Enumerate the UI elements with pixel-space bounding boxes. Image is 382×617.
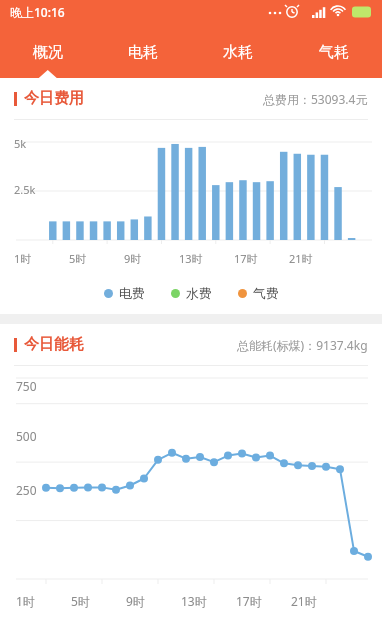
staticText: 5时 — [71, 593, 90, 609]
staticText: 水耗 — [223, 43, 253, 62]
button[interactable]: 电费 — [104, 285, 145, 301]
staticText: 电费 — [119, 285, 145, 301]
staticText: 13时 — [179, 251, 203, 266]
button[interactable]: 5k — [0, 120, 382, 272]
staticText: 9时 — [126, 593, 145, 609]
staticText: 1时 — [14, 251, 32, 266]
staticText: 750 — [16, 378, 37, 394]
staticText: 9时 — [124, 251, 142, 266]
staticText: 晚上10:16 — [10, 4, 65, 20]
button[interactable]: 750 — [0, 366, 382, 617]
staticText: 21时 — [291, 593, 317, 609]
button[interactable]: 水费 — [171, 285, 212, 301]
staticText: 水费 — [186, 285, 212, 301]
staticText: 500 — [16, 428, 37, 444]
staticText: 概况 — [33, 43, 63, 62]
staticText: 气耗 — [319, 43, 349, 62]
staticText: 17时 — [234, 251, 258, 266]
staticText: 21时 — [289, 251, 313, 266]
staticText: 今日费用 — [24, 89, 84, 108]
button[interactable]: 电耗 — [95, 26, 190, 78]
staticText: 250 — [16, 482, 37, 498]
button[interactable]: 概况 — [0, 26, 95, 78]
staticText: 2.5k — [14, 182, 36, 197]
staticText: 今日能耗 — [24, 335, 84, 354]
staticText: 总费用：53093.4元 — [263, 91, 368, 107]
button[interactable]: 气耗 — [286, 26, 382, 78]
staticText: 13时 — [181, 593, 207, 609]
staticText: 17时 — [236, 593, 262, 609]
staticText: 5k — [14, 136, 27, 151]
staticText: 1时 — [16, 593, 35, 609]
staticText: 总能耗(标煤)：9137.4kg — [237, 337, 368, 353]
button[interactable]: 水耗 — [190, 26, 286, 78]
staticText: 5时 — [69, 251, 87, 266]
staticText: 电耗 — [128, 43, 158, 62]
staticText: 气费 — [253, 285, 279, 301]
button[interactable]: 气费 — [238, 285, 279, 301]
